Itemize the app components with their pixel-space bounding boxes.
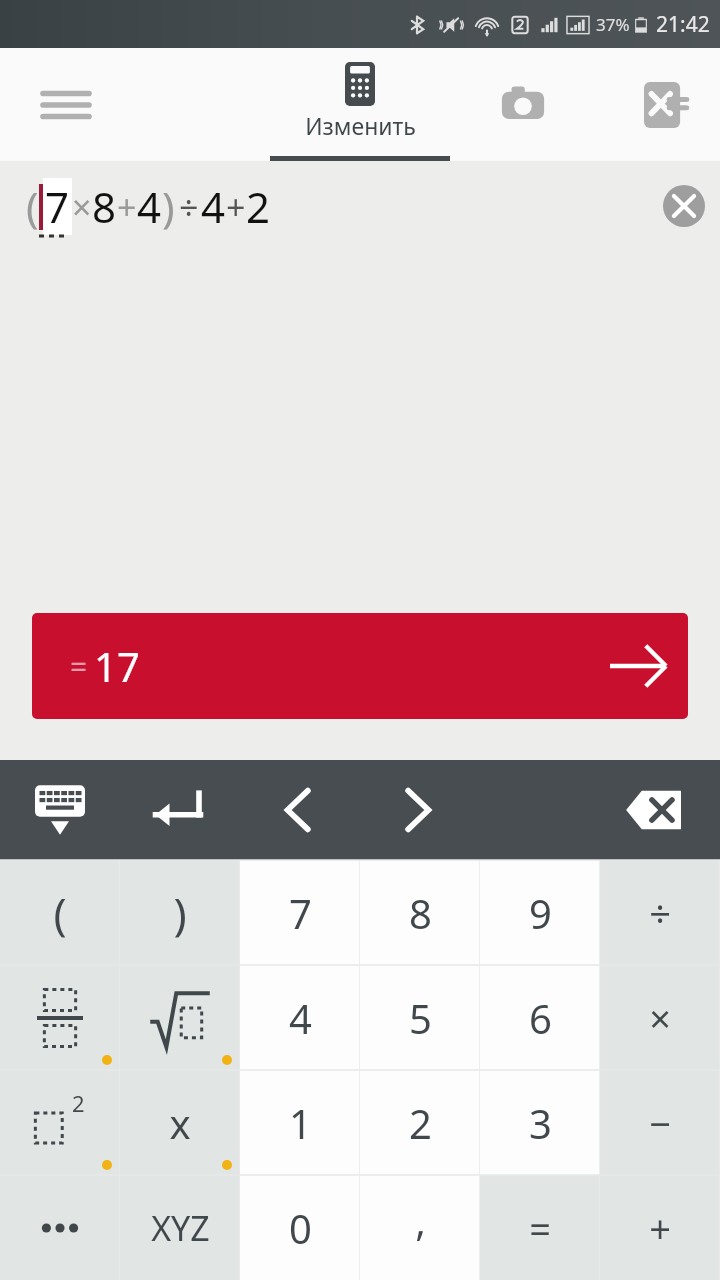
staticText: × bbox=[649, 992, 671, 1044]
button[interactable]: 4 bbox=[240, 965, 360, 1070]
button[interactable]: Move right bbox=[378, 760, 458, 860]
staticText: 1 bbox=[289, 1096, 312, 1150]
button[interactable]: Изменить bbox=[270, 48, 450, 161]
button[interactable]: 1 bbox=[240, 1070, 360, 1175]
staticText: + bbox=[117, 184, 137, 230]
staticText: = bbox=[70, 646, 88, 687]
button[interactable]: x bbox=[120, 1070, 240, 1175]
staticText: 0 bbox=[289, 1201, 312, 1255]
staticText: × bbox=[72, 184, 92, 230]
staticText: 2 bbox=[246, 178, 271, 235]
button[interactable]: Move left bbox=[258, 760, 338, 860]
staticText: ÷ bbox=[649, 887, 671, 939]
button[interactable]: 6 bbox=[480, 965, 600, 1070]
button[interactable]: 5 bbox=[360, 965, 480, 1070]
staticText: = bbox=[529, 1202, 551, 1254]
staticText: x bbox=[169, 1096, 191, 1150]
button[interactable]: Multiply bbox=[600, 965, 720, 1070]
button[interactable]: Clear bbox=[648, 170, 720, 242]
button[interactable]: Menu bbox=[0, 48, 132, 161]
button[interactable]: = bbox=[32, 613, 688, 719]
staticText: 2 bbox=[409, 1096, 432, 1150]
staticText: 37% bbox=[596, 13, 630, 36]
staticText: ÷ bbox=[179, 184, 199, 230]
button[interactable]: Power bbox=[0, 1070, 120, 1175]
button[interactable]: Plus bbox=[600, 1175, 720, 1280]
staticText: ( bbox=[26, 178, 39, 235]
button[interactable]: 0 bbox=[240, 1175, 360, 1280]
staticText: ( bbox=[53, 883, 67, 943]
button[interactable]: Fraction bbox=[0, 965, 120, 1070]
button[interactable]: More bbox=[0, 1175, 120, 1280]
staticText: 4 bbox=[201, 178, 226, 235]
staticText: , bbox=[415, 1193, 426, 1247]
button[interactable]: Divide bbox=[600, 860, 720, 965]
button[interactable]: Equals bbox=[480, 1175, 600, 1280]
button[interactable]: Solve bbox=[610, 48, 720, 161]
staticText: 3 bbox=[529, 1096, 552, 1150]
staticText: 7 bbox=[289, 886, 312, 940]
staticText: 17 bbox=[94, 639, 140, 693]
staticText: ) bbox=[162, 178, 175, 235]
staticText: 8 bbox=[92, 178, 117, 235]
staticText: + bbox=[649, 1202, 671, 1254]
staticText: 4 bbox=[137, 178, 162, 235]
button[interactable]: Decimal comma bbox=[360, 1175, 480, 1280]
staticText: ) bbox=[173, 883, 187, 943]
staticText: − bbox=[649, 1097, 671, 1149]
button[interactable]: Camera bbox=[461, 48, 585, 161]
button[interactable]: 2 bbox=[360, 1070, 480, 1175]
staticText: 6 bbox=[529, 991, 552, 1045]
button[interactable]: 9 bbox=[480, 860, 600, 965]
staticText: 5 bbox=[409, 991, 432, 1045]
button[interactable]: Enter bbox=[138, 760, 218, 860]
staticText: 7 bbox=[45, 178, 70, 235]
button[interactable]: 8 bbox=[360, 860, 480, 965]
staticText: Изменить bbox=[305, 110, 416, 141]
staticText: 9 bbox=[529, 886, 552, 940]
button[interactable]: Square root bbox=[120, 965, 240, 1070]
button[interactable]: Open parenthesis bbox=[0, 860, 120, 965]
button[interactable]: Backspace bbox=[608, 760, 698, 860]
staticText: + bbox=[226, 184, 246, 230]
staticText: 8 bbox=[409, 886, 432, 940]
button[interactable]: Close parenthesis bbox=[120, 860, 240, 965]
button[interactable]: Hide keyboard bbox=[20, 760, 100, 860]
button[interactable]: Minus bbox=[600, 1070, 720, 1175]
button[interactable]: XYZ bbox=[120, 1175, 240, 1280]
staticText: 21:42 bbox=[656, 10, 710, 39]
staticText: 2 bbox=[72, 1088, 85, 1118]
staticText: 4 bbox=[289, 991, 312, 1045]
button[interactable]: 7 bbox=[240, 860, 360, 965]
staticText: XYZ bbox=[151, 1205, 210, 1251]
button[interactable]: 3 bbox=[480, 1070, 600, 1175]
